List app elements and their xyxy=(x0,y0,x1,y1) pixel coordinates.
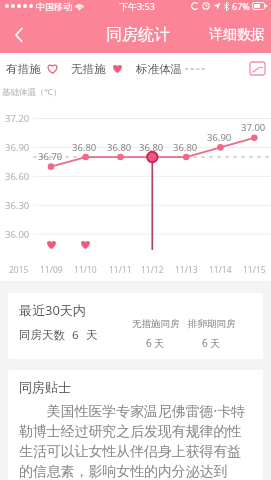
button[interactable]: Chart view xyxy=(250,57,265,80)
staticText: 天 xyxy=(86,328,98,342)
staticText: 有措施 xyxy=(6,62,41,76)
staticText: 11/10 xyxy=(74,264,97,276)
staticText: 11/11 xyxy=(109,264,132,276)
staticText: 6 xyxy=(72,327,79,343)
staticText: 11/13 xyxy=(175,264,198,276)
staticText: 6 天 xyxy=(146,336,165,350)
staticText: 2015 xyxy=(9,264,29,276)
staticText: 无措施 xyxy=(71,62,106,76)
staticText: 36.30 xyxy=(5,199,30,212)
staticText: 36.80 xyxy=(139,141,164,154)
staticText: 中国移动 xyxy=(36,1,72,12)
staticText: 同房统计 xyxy=(106,25,170,45)
staticText: 36.90 xyxy=(207,131,232,144)
staticText: 无措施同房 xyxy=(132,318,180,330)
staticText: 11/15 xyxy=(243,264,266,276)
staticText: 36.90 xyxy=(5,141,30,154)
button[interactable]: 最近30天内 xyxy=(8,293,263,359)
staticText: 11/14 xyxy=(209,264,232,276)
button[interactable]: 详细数据 xyxy=(199,18,271,52)
staticText: 37.00 xyxy=(241,121,266,134)
staticText: 同房天数 xyxy=(19,328,65,342)
staticText: 基础体温（℃） xyxy=(2,86,62,98)
staticText: 美国性医学专家温尼佛雷德·卡特勒博士经过研究之后发现有规律的性生活可以让女性从伴… xyxy=(19,401,252,480)
staticText: 37.20 xyxy=(5,112,30,125)
staticText: 排卵期同房 xyxy=(188,318,236,330)
staticText: 6 天 xyxy=(202,336,221,350)
staticText: 详细数据 xyxy=(209,26,265,44)
staticText: 36.80 xyxy=(72,141,97,154)
button[interactable]: Back xyxy=(0,16,37,53)
staticText: 同房贴士 xyxy=(19,379,71,395)
button[interactable]: 同房贴士 xyxy=(8,370,263,480)
staticText: 36.80 xyxy=(107,141,132,154)
staticText: 最近30天内 xyxy=(19,301,86,319)
staticText: 36.00 xyxy=(5,228,30,241)
staticText: 36.60 xyxy=(5,170,30,183)
staticText: 标准体温 xyxy=(136,62,182,76)
staticText: 11/09 xyxy=(40,264,63,276)
staticText: 67% xyxy=(232,0,250,12)
staticText: 36.70 xyxy=(38,150,63,163)
staticText: 下午3:53 xyxy=(119,0,155,12)
staticText: 11/12 xyxy=(141,264,164,276)
staticText: 36.80 xyxy=(173,141,198,154)
